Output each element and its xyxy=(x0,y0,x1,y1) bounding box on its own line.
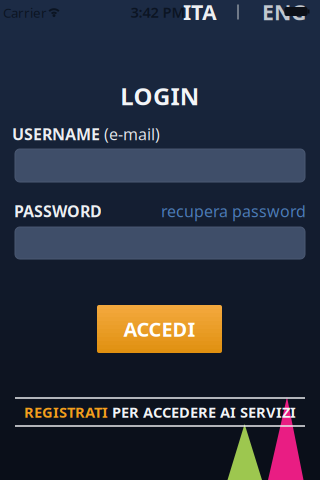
button[interactable]: ITA xyxy=(183,0,217,26)
staticText: LOGIN xyxy=(120,80,200,112)
button[interactable]: ACCEDI xyxy=(97,305,222,353)
staticText: 3:42 PM xyxy=(130,2,185,22)
button[interactable]: recupera password xyxy=(161,200,306,222)
staticText: REGISTRATI xyxy=(24,402,108,422)
staticText: (e-mail) xyxy=(100,123,160,145)
staticText: PER ACCEDERE AI SERVIZI xyxy=(108,402,296,422)
staticText: ITA xyxy=(183,0,217,26)
button[interactable]: REGISTRATI xyxy=(24,402,296,422)
staticText: recupera password xyxy=(161,200,306,222)
staticText: USERNAME xyxy=(12,123,100,145)
staticText: ENG xyxy=(262,0,306,26)
staticText: PASSWORD xyxy=(14,200,102,222)
button[interactable]: ENG xyxy=(262,0,306,26)
staticText: Carrier xyxy=(3,4,47,21)
staticText: ACCEDI xyxy=(123,316,195,342)
